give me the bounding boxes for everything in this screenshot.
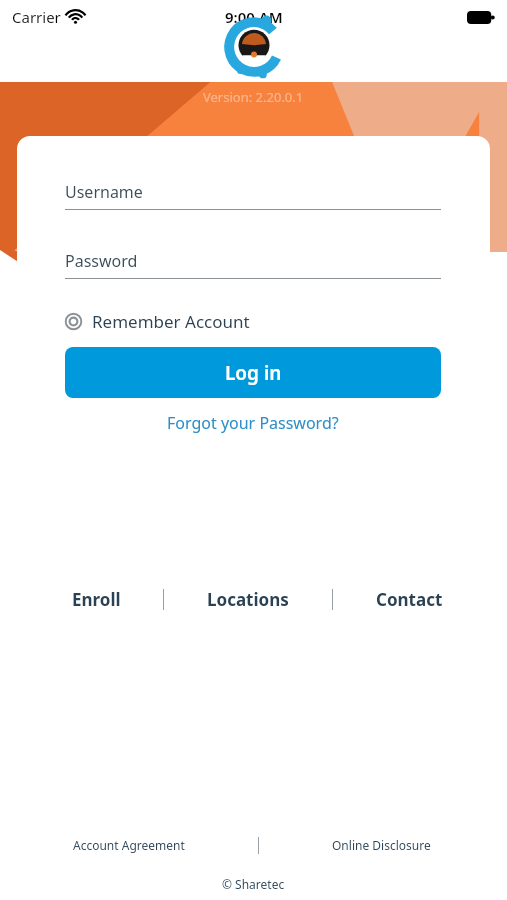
staticText: Password	[65, 250, 138, 272]
button[interactable]: Password	[65, 250, 441, 279]
staticText: Enroll	[72, 588, 121, 610]
staticText: Version: 2.20.0.1	[203, 88, 304, 106]
other: Battery full	[467, 11, 494, 24]
button[interactable]: Enroll	[72, 584, 121, 614]
staticText: Remember Account	[92, 310, 250, 333]
staticText: Username	[65, 181, 143, 203]
staticText: Carrier	[12, 7, 61, 27]
button[interactable]: Forgot your Password?	[65, 412, 441, 434]
button[interactable]: Remember Account	[65, 303, 441, 339]
staticText: Forgot your Password?	[167, 412, 339, 434]
button[interactable]: Online Disclosure	[332, 837, 431, 853]
staticText: Account Agreement	[73, 837, 185, 853]
other: Wi-Fi signal	[66, 10, 85, 24]
staticText: Log in	[225, 360, 282, 386]
staticText: 9:00 AM	[225, 7, 283, 27]
staticText: Online Disclosure	[332, 837, 431, 853]
staticText: © Sharetec	[222, 876, 285, 892]
button[interactable]: Log in	[65, 347, 441, 398]
other: Credit union logo	[223, 16, 285, 78]
staticText: Locations	[207, 588, 289, 610]
button[interactable]: Account Agreement	[73, 837, 185, 853]
staticText: Contact	[376, 588, 443, 610]
button[interactable]: Contact	[376, 584, 443, 614]
button[interactable]: Username	[65, 181, 441, 210]
button[interactable]: Locations	[207, 584, 289, 614]
